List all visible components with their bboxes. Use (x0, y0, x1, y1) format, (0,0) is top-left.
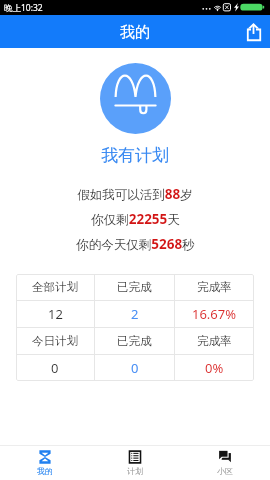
staticText: 0 (131, 359, 139, 377)
staticText: 我的 (37, 466, 53, 476)
staticText: 已完成 (117, 280, 152, 294)
staticText: 计划 (127, 466, 143, 476)
button[interactable]: 我的 (0, 446, 90, 480)
staticText: 你的今天仅剩5268秒 (76, 235, 195, 253)
staticText: 0% (205, 359, 224, 377)
staticText: 我的 (120, 23, 150, 42)
staticText: 已完成 (117, 334, 152, 348)
staticText: 你仅剩22255天 (91, 210, 180, 228)
staticText: 16.67% (192, 305, 237, 323)
button[interactable]: 小区 (180, 446, 270, 480)
button[interactable]: 计划 (90, 446, 180, 480)
staticText: 完成率 (197, 334, 232, 348)
staticText: 晚上10:32 (4, 2, 43, 14)
staticText: 小区 (217, 466, 233, 476)
staticText: 全部计划 (32, 280, 78, 294)
staticText: 12 (48, 305, 63, 323)
button[interactable]: Share (236, 14, 270, 48)
staticText: 我有计划 (101, 145, 169, 166)
staticText: 0 (51, 359, 59, 377)
staticText: 完成率 (197, 280, 232, 294)
staticText: 2 (131, 305, 139, 323)
staticText: 今日计划 (32, 334, 78, 348)
staticText: 假如我可以活到88岁 (77, 185, 193, 203)
